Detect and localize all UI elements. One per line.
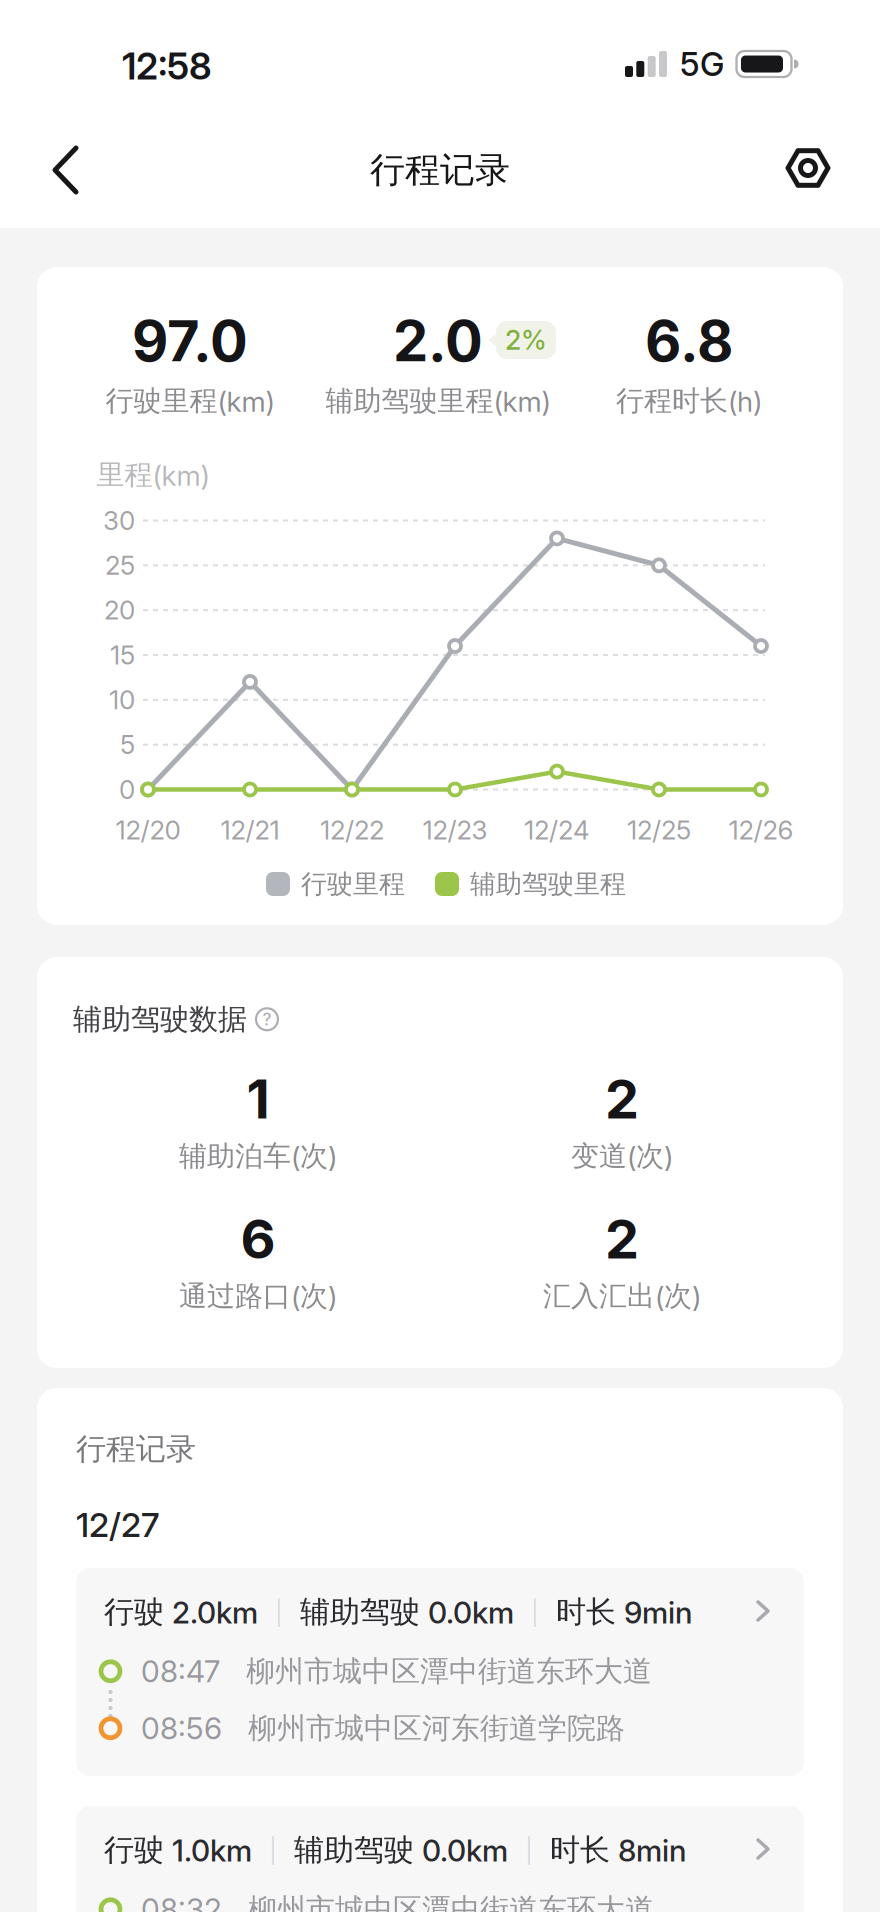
staticText: 12/26: [728, 814, 793, 846]
staticText: 15: [110, 639, 135, 671]
staticText: 12/21: [220, 814, 279, 846]
staticText: 6: [240, 1206, 275, 1271]
staticText: 12/27: [76, 1504, 159, 1545]
staticText: 08:56: [141, 1710, 222, 1746]
staticText: |: [269, 1835, 277, 1864]
staticText: 0: [119, 774, 135, 805]
staticText: 行驶里程(km): [105, 383, 274, 419]
staticText: 12/24: [524, 814, 590, 846]
staticText: 辅助驾驶 0.0km: [294, 1831, 508, 1869]
staticText: 12/25: [627, 814, 691, 846]
staticText: |: [525, 1835, 533, 1864]
staticText: 行驶 2.0km: [104, 1593, 258, 1631]
staticText: 2: [605, 1206, 639, 1271]
staticText: 2.0: [393, 307, 483, 375]
staticText: 里程(km): [96, 457, 209, 493]
staticText: 时长 8min: [550, 1831, 686, 1869]
staticText: 柳州市城中区潭中街道东环大道: [248, 1891, 654, 1912]
staticText: 10: [109, 684, 135, 716]
button[interactable]: Back: [34, 138, 98, 202]
staticText: 辅助驾驶数据: [73, 1001, 247, 1037]
staticText: 5: [120, 729, 135, 760]
staticText: |: [531, 1597, 539, 1626]
staticText: 时长 9min: [556, 1593, 692, 1631]
staticText: 辅助驾驶 0.0km: [300, 1593, 514, 1631]
staticText: 97.0: [132, 307, 248, 375]
staticText: 行程时长(h): [616, 383, 762, 419]
staticText: ?: [262, 1009, 271, 1030]
staticText: 通过路口(次): [179, 1278, 337, 1314]
staticText: |: [275, 1597, 283, 1626]
staticText: 变道(次): [571, 1138, 673, 1174]
staticText: 行程记录: [76, 1430, 196, 1468]
staticText: 30: [103, 505, 135, 536]
staticText: 2: [605, 1066, 639, 1131]
staticText: 柳州市城中区潭中街道东环大道: [246, 1653, 652, 1689]
staticText: 辅助泊车(次): [179, 1138, 337, 1174]
staticText: 08:32: [141, 1891, 222, 1912]
staticText: 6.8: [645, 307, 733, 375]
staticText: 柳州市城中区河东街道学院路: [248, 1710, 625, 1746]
staticText: 汇入汇出(次): [543, 1278, 701, 1314]
staticText: 行程记录: [370, 148, 510, 192]
staticText: 2%: [505, 324, 547, 356]
button[interactable]: 行驶 2.0km: [76, 1568, 804, 1776]
staticText: 1: [246, 1066, 269, 1131]
staticText: 行驶里程: [301, 868, 405, 900]
staticText: 12/20: [115, 814, 180, 846]
staticText: 20: [104, 594, 135, 626]
staticText: 辅助驾驶里程(km): [325, 383, 550, 419]
staticText: 25: [105, 550, 135, 581]
staticText: 12/23: [422, 814, 487, 846]
button[interactable]: Settings: [776, 136, 840, 200]
staticText: 12/22: [320, 814, 384, 846]
button[interactable]: Help: [256, 1008, 278, 1030]
staticText: 12:58: [122, 44, 212, 88]
staticText: 行驶 1.0km: [104, 1831, 252, 1869]
button[interactable]: 行驶 1.0km: [76, 1806, 804, 1912]
staticText: 08:47: [141, 1653, 220, 1689]
staticText: 5G: [680, 44, 724, 84]
staticText: 辅助驾驶里程: [470, 868, 626, 900]
